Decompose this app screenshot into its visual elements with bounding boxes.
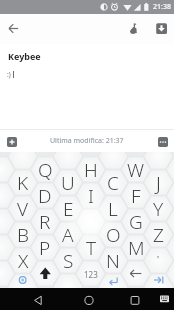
button[interactable]: P [31, 235, 59, 261]
staticText: C [107, 170, 119, 196]
button[interactable] [151, 18, 172, 39]
staticText: I [88, 183, 94, 209]
staticText: M [128, 235, 145, 261]
staticText: O [106, 222, 121, 248]
button[interactable]: I [77, 183, 105, 209]
button[interactable]: A [54, 222, 82, 248]
button[interactable] [125, 289, 145, 309]
staticText: X [18, 248, 29, 274]
staticText: Q [38, 157, 53, 183]
staticText: H [84, 157, 98, 183]
staticText: Ultima modifica: 21:37 [50, 136, 124, 146]
staticText: N [106, 248, 120, 274]
staticText: Z [153, 222, 164, 248]
button[interactable] [124, 19, 143, 38]
staticText: F [131, 183, 141, 209]
button[interactable] [4, 19, 23, 38]
staticText: Keybee [8, 50, 41, 62]
staticText: T [86, 235, 97, 261]
button[interactable]: T [77, 235, 105, 261]
button[interactable]: M [122, 235, 150, 261]
button[interactable]: B [9, 222, 37, 248]
button[interactable]: R [31, 209, 59, 235]
button[interactable] [28, 289, 48, 309]
staticText: G [129, 209, 143, 235]
button[interactable]: Z [144, 222, 172, 248]
button[interactable]: D [31, 183, 59, 209]
button[interactable]: K [9, 170, 37, 196]
button[interactable]: L [99, 196, 127, 222]
staticText: ' [157, 253, 160, 265]
button[interactable]: E [54, 196, 82, 222]
button[interactable] [153, 132, 172, 151]
staticText: E [63, 196, 74, 222]
staticText: D [38, 183, 52, 209]
staticText: V [17, 196, 29, 222]
staticText: L [108, 196, 118, 222]
button[interactable]: X [9, 248, 37, 274]
button[interactable]: U [54, 170, 82, 196]
button[interactable]: C [99, 170, 127, 196]
button[interactable]: 123 [77, 261, 105, 287]
button[interactable] [2, 132, 21, 151]
staticText: J [156, 170, 161, 196]
staticText: Y [153, 196, 164, 222]
staticText: R [39, 209, 51, 235]
button[interactable]: J [144, 170, 172, 196]
staticText: K [17, 170, 29, 196]
button[interactable] [155, 289, 174, 309]
staticText: B [17, 222, 29, 248]
staticText: A [62, 222, 74, 248]
staticText: U [61, 170, 75, 196]
button[interactable]: G [122, 209, 150, 235]
button[interactable]: W [122, 157, 150, 183]
button[interactable]: S [54, 248, 82, 274]
staticText: 21:38 [153, 2, 171, 12]
staticText: P [39, 235, 51, 261]
button[interactable]: N [99, 248, 127, 274]
button[interactable]: Y [144, 196, 172, 222]
staticText: 123 [84, 269, 98, 280]
button[interactable]: O [99, 222, 127, 248]
staticText: :) [7, 70, 11, 79]
staticText: W [127, 157, 145, 183]
button[interactable]: Q [31, 157, 59, 183]
button[interactable]: F [122, 183, 150, 209]
button[interactable]: ' [144, 253, 172, 265]
button[interactable]: V [9, 196, 37, 222]
button[interactable] [79, 289, 99, 309]
button[interactable]: H [77, 157, 105, 183]
staticText: S [63, 248, 74, 274]
